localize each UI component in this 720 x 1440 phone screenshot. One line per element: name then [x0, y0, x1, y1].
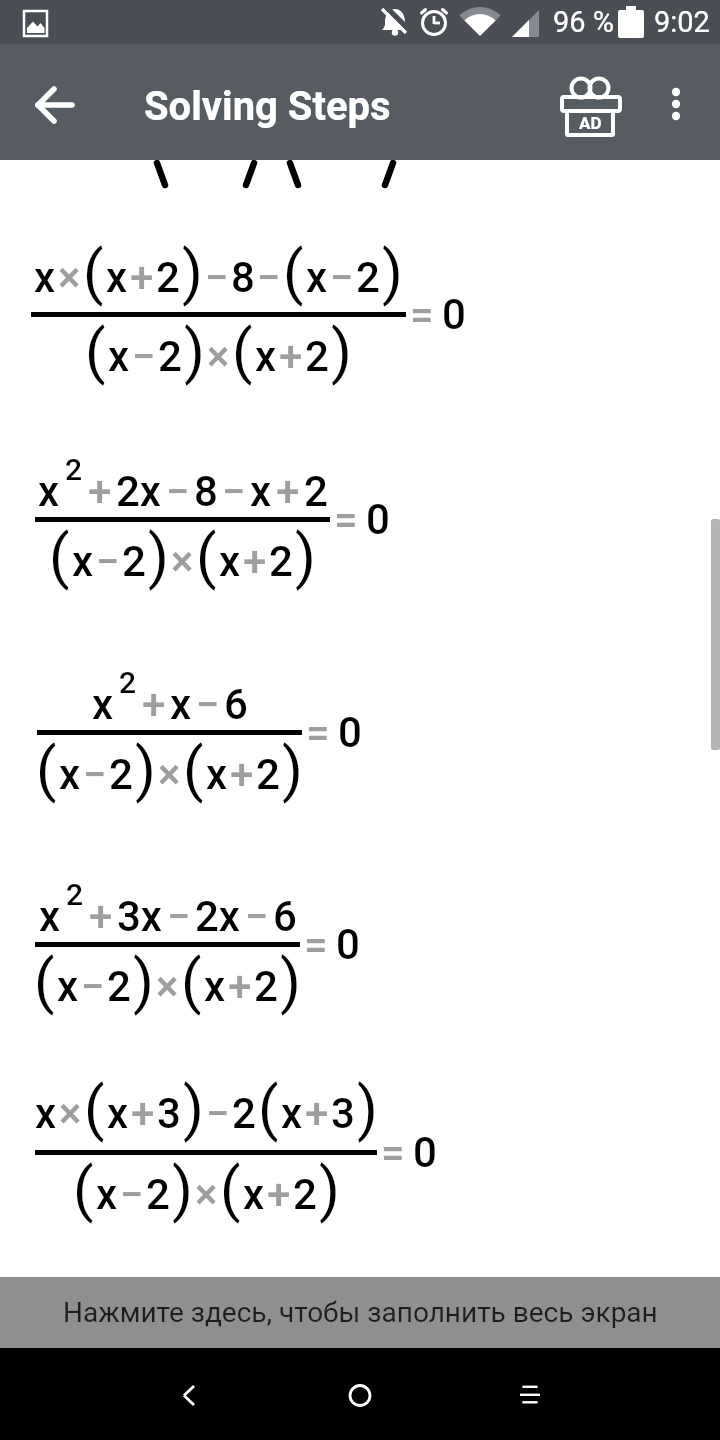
staticText: ) [331, 316, 352, 386]
staticText: 3x [117, 892, 163, 941]
staticText: + [142, 680, 166, 729]
staticText: ) [135, 734, 156, 804]
staticText: 2 [156, 253, 180, 302]
staticText: ( [83, 237, 104, 307]
button[interactable] [330, 1366, 390, 1424]
staticText: ( [85, 316, 106, 386]
staticText: − [83, 750, 107, 799]
staticText: 2 [304, 467, 328, 516]
staticText: 2 [146, 1170, 170, 1219]
staticText: ( [49, 521, 70, 591]
staticText: 2 [66, 877, 84, 912]
staticText: 0 [413, 1128, 437, 1177]
staticText: 3 [157, 1089, 181, 1138]
staticText: x [92, 680, 114, 729]
staticText: − [81, 962, 105, 1011]
staticText: × [171, 537, 194, 586]
staticText: ( [196, 521, 217, 591]
staticText: ( [258, 1073, 279, 1143]
staticText: x [170, 680, 192, 729]
staticText: = [304, 920, 328, 969]
staticText: 2 [254, 962, 278, 1011]
staticText: ) [280, 946, 301, 1016]
button[interactable]: AD [556, 72, 626, 140]
staticText: 2 [232, 1089, 256, 1138]
staticText: − [257, 253, 281, 302]
staticText: 2 [107, 962, 131, 1011]
staticText: 2 [256, 750, 280, 799]
staticText: × [207, 332, 230, 381]
staticText: = [306, 708, 330, 757]
staticText: 3 [331, 1089, 355, 1138]
staticText: x [96, 1170, 118, 1219]
staticText: − [330, 253, 354, 302]
staticText: x [72, 537, 94, 586]
button[interactable] [656, 84, 696, 124]
staticText: ( [232, 316, 253, 386]
staticText: x [204, 962, 226, 1011]
button[interactable] [25, 75, 85, 135]
staticText: ( [283, 237, 304, 307]
staticText: 6 [224, 680, 248, 729]
staticText: + [88, 467, 112, 516]
staticText: = [381, 1128, 405, 1177]
staticText: ( [34, 946, 55, 1016]
staticText: ) [183, 1073, 204, 1143]
staticText: ) [172, 1154, 193, 1224]
staticText: + [230, 750, 254, 799]
staticText: 2 [293, 1170, 317, 1219]
staticText: − [96, 537, 120, 586]
staticText: ( [73, 1154, 94, 1224]
staticText: ) [184, 316, 205, 386]
staticText: 2 [269, 537, 293, 586]
staticText: 8 [231, 253, 255, 302]
staticText: ) [148, 521, 169, 591]
staticText: x [106, 253, 128, 302]
staticText: × [158, 750, 181, 799]
staticText: ( [181, 946, 202, 1016]
staticText: + [276, 467, 300, 516]
staticText: + [243, 537, 267, 586]
staticText: x [250, 467, 272, 516]
staticText: = [334, 495, 358, 544]
staticText: ) [357, 1073, 378, 1143]
staticText: 9:02 [654, 5, 710, 39]
staticText: + [228, 962, 252, 1011]
staticText: ( [183, 734, 204, 804]
button[interactable] [500, 1366, 560, 1424]
staticText: 8 [194, 467, 218, 516]
button[interactable]: Нажмите здесь, чтобы заполнить весь экра… [0, 1277, 720, 1348]
staticText: ) [319, 1154, 340, 1224]
staticText: 2 [305, 332, 329, 381]
staticText: − [245, 892, 269, 941]
staticText: 2 [109, 750, 133, 799]
staticText: ) [182, 237, 203, 307]
staticText: ) [133, 946, 154, 1016]
staticText: x [59, 750, 81, 799]
staticText: 2x [116, 467, 162, 516]
staticText: + [267, 1170, 291, 1219]
staticText: x [34, 253, 56, 302]
staticText: × [59, 1089, 82, 1138]
staticText: AD [579, 113, 602, 133]
staticText: + [279, 332, 303, 381]
staticText: 2 [356, 253, 380, 302]
staticText: x [38, 467, 60, 516]
staticText: − [167, 892, 191, 941]
staticText: + [130, 253, 154, 302]
staticText: x [107, 1089, 129, 1138]
staticText: 0 [336, 920, 360, 969]
staticText: x [35, 1089, 57, 1138]
staticText: × [58, 253, 81, 302]
button[interactable] [160, 1366, 220, 1424]
staticText: 2 [122, 537, 146, 586]
staticText: x [306, 253, 328, 302]
staticText: Нажмите здесь, чтобы заполнить весь экра… [63, 1296, 658, 1329]
staticText: ) [295, 521, 316, 591]
staticText: 2 [158, 332, 182, 381]
staticText: x [255, 332, 277, 381]
staticText: ( [220, 1154, 241, 1224]
staticText: ) [382, 237, 403, 307]
staticText: × [156, 962, 179, 1011]
staticText: 0 [442, 290, 466, 339]
